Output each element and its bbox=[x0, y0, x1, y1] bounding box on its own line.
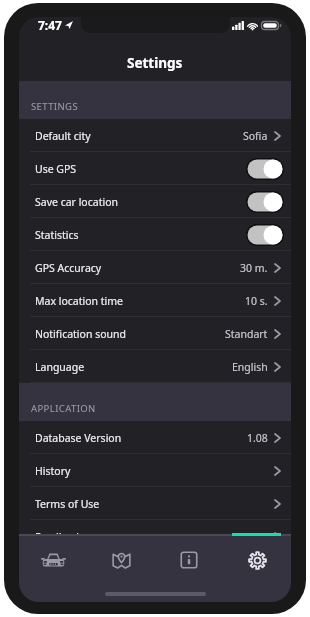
staticText: Language bbox=[35, 360, 85, 374]
button[interactable]: Statistics bbox=[19, 218, 291, 251]
staticText: 7:47 bbox=[38, 17, 62, 33]
staticText: Settings bbox=[127, 54, 183, 72]
button[interactable]: Settings bbox=[223, 536, 291, 584]
staticText: 10 s. bbox=[245, 294, 268, 308]
staticText: Terms of Use bbox=[35, 497, 100, 511]
staticText: Database Version bbox=[35, 431, 122, 445]
staticText: Save car location bbox=[35, 195, 118, 209]
button[interactable]: GPS Accuracy bbox=[19, 251, 291, 284]
button[interactable]: Max location time bbox=[19, 284, 291, 317]
staticText: Standart bbox=[225, 327, 268, 341]
button[interactable]: Toggle bbox=[246, 224, 284, 246]
button[interactable]: Toggle bbox=[246, 158, 284, 180]
button[interactable]: Notification sound bbox=[19, 317, 291, 350]
staticText: SETTINGS bbox=[31, 100, 79, 113]
button[interactable]: Language bbox=[19, 350, 291, 383]
staticText: Feedback bbox=[35, 530, 82, 544]
button[interactable]: Cars bbox=[19, 536, 87, 584]
button[interactable]: Feedback bbox=[19, 520, 291, 553]
button[interactable]: Info bbox=[155, 536, 223, 584]
button[interactable]: Map bbox=[87, 536, 155, 584]
button[interactable]: History bbox=[19, 454, 291, 487]
staticText: Default city bbox=[35, 129, 91, 143]
staticText: History bbox=[35, 464, 71, 478]
staticText: 1.08 bbox=[247, 431, 268, 445]
button[interactable]: Toggle bbox=[246, 191, 284, 213]
button[interactable]: Save car location bbox=[19, 185, 291, 218]
staticText: Max location time bbox=[35, 294, 124, 308]
staticText: APPLICATION bbox=[31, 402, 96, 415]
button[interactable]: Use GPS bbox=[19, 152, 291, 185]
staticText: Sofia bbox=[243, 129, 268, 143]
button[interactable]: Default city bbox=[19, 119, 291, 152]
staticText: Use GPS bbox=[35, 162, 77, 176]
staticText: Statistics bbox=[35, 228, 79, 242]
button[interactable]: Terms of Use bbox=[19, 487, 291, 520]
button[interactable]: Database Version bbox=[19, 421, 291, 454]
staticText: GPS Accuracy bbox=[35, 261, 102, 275]
staticText: 30 m. bbox=[240, 261, 268, 275]
staticText: Notification sound bbox=[35, 327, 126, 341]
staticText: English bbox=[232, 360, 268, 374]
